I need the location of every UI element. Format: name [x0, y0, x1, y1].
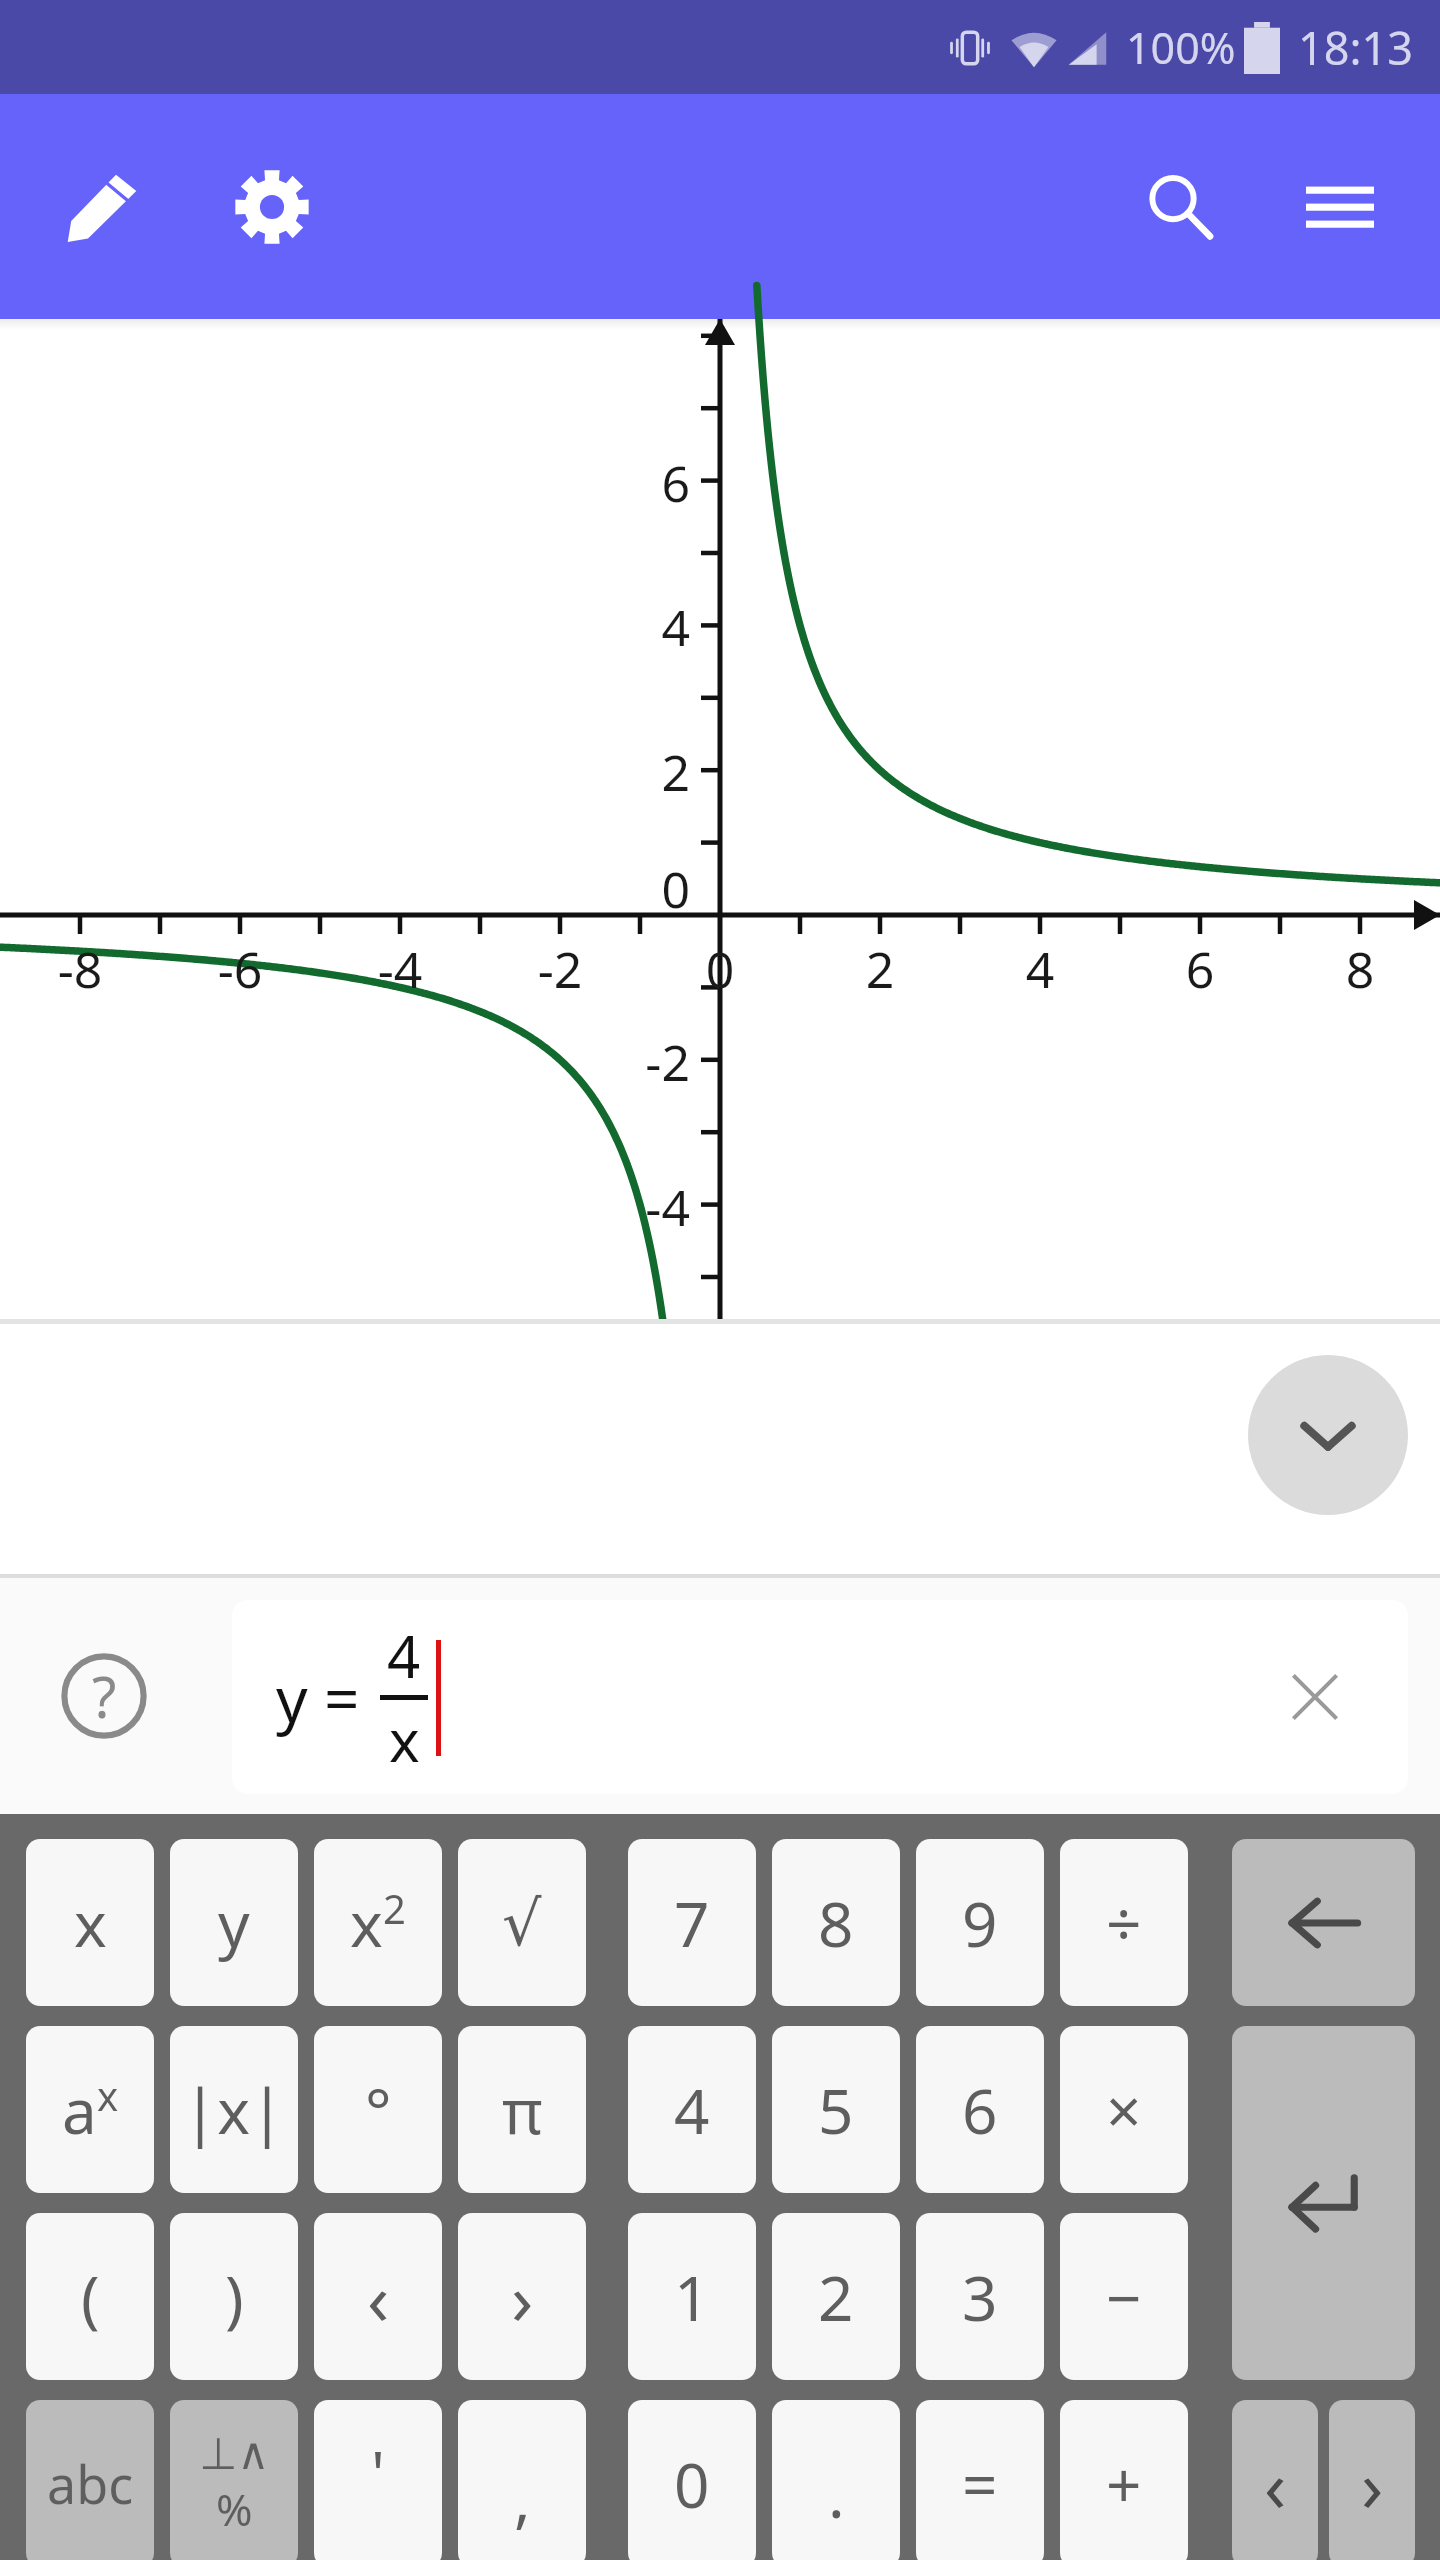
staticText: 8 — [818, 1881, 854, 1965]
staticText: x — [97, 2068, 119, 2122]
staticText: = — [962, 2442, 998, 2526]
button[interactable]: = — [916, 2400, 1044, 2560]
staticText: 4 — [674, 2068, 710, 2152]
staticText: a — [62, 2068, 97, 2152]
staticText: √ — [502, 1887, 542, 1959]
staticText: ÷ — [1106, 1881, 1142, 1965]
button[interactable]: , — [458, 2400, 586, 2560]
button[interactable]: y — [170, 1839, 298, 2006]
button[interactable]: x — [314, 1839, 442, 2006]
staticText: 4 — [610, 593, 690, 661]
staticText: 2 — [818, 2255, 854, 2339]
button[interactable]: Backspace — [1232, 1839, 1415, 2006]
button[interactable]: − — [1060, 2213, 1188, 2380]
button[interactable]: 9 — [916, 1839, 1044, 2006]
button[interactable]: abc — [26, 2400, 154, 2560]
staticText: 2 — [610, 738, 690, 806]
staticText: ⊥∧ — [199, 2428, 270, 2479]
button[interactable]: ⊥∧ — [170, 2400, 298, 2560]
button[interactable]: Clear — [1270, 1652, 1360, 1742]
staticText: -4 — [360, 935, 440, 1003]
staticText: , — [514, 2456, 531, 2540]
button[interactable]: Move left — [1232, 2400, 1318, 2560]
staticText: ‹ — [1264, 2435, 1287, 2533]
button[interactable]: 4 — [628, 2026, 756, 2193]
button[interactable]: Move right — [1329, 2400, 1415, 2560]
button[interactable]: Settings — [216, 151, 328, 263]
button[interactable]: y — [232, 1600, 1408, 1794]
staticText: |x| — [183, 2068, 285, 2152]
staticText: -2 — [610, 1028, 690, 1096]
staticText: 7 — [674, 1881, 710, 1965]
staticText: 0 — [674, 2442, 710, 2526]
staticText: 9 — [962, 1881, 998, 1965]
button[interactable]: Enter — [1232, 2026, 1415, 2380]
button[interactable]: ÷ — [1060, 1839, 1188, 2006]
staticText: . — [828, 2452, 845, 2536]
staticText: = — [324, 1656, 360, 1740]
button[interactable]: × — [1060, 2026, 1188, 2193]
button[interactable]: 6 — [916, 2026, 1044, 2193]
staticText: 0 — [680, 935, 760, 1003]
button[interactable]: 7 — [628, 1839, 756, 2006]
button[interactable]: › — [458, 2213, 586, 2380]
button[interactable]: ( — [26, 2213, 154, 2380]
staticText: 2 — [840, 935, 920, 1003]
button[interactable]: 5 — [772, 2026, 900, 2193]
staticText: 2 — [383, 1881, 406, 1935]
staticText: x — [350, 1881, 383, 1965]
staticText: ° — [365, 2068, 392, 2152]
staticText: + — [1106, 2442, 1142, 2526]
button[interactable]: Collapse — [1248, 1355, 1408, 1515]
button[interactable]: ° — [314, 2026, 442, 2193]
button[interactable]: |x| — [170, 2026, 298, 2193]
button[interactable]: 0 — [628, 2400, 756, 2560]
staticText: − — [1106, 2255, 1142, 2339]
staticText: › — [511, 2248, 534, 2346]
staticText: ' — [371, 2430, 385, 2514]
staticText: -6 — [200, 935, 280, 1003]
button[interactable]: Edit — [46, 151, 158, 263]
staticText: % — [216, 2479, 253, 2539]
staticText: 100% — [1126, 18, 1236, 77]
staticText: ‹ — [367, 2248, 390, 2346]
staticText: abc — [47, 2448, 134, 2519]
button[interactable]: Help — [40, 1632, 168, 1760]
staticText: 8 — [1320, 935, 1400, 1003]
staticText: 6 — [962, 2068, 998, 2152]
staticText: › — [1361, 2435, 1384, 2533]
staticText: 5 — [818, 2068, 854, 2152]
button[interactable]: 8 — [772, 1839, 900, 2006]
staticText: -8 — [40, 935, 120, 1003]
button[interactable]: Search — [1124, 151, 1236, 263]
button[interactable]: √ — [458, 1839, 586, 2006]
button[interactable]: π — [458, 2026, 586, 2193]
staticText: π — [502, 2068, 543, 2152]
button[interactable]: Menu — [1284, 151, 1396, 263]
button[interactable]: 3 — [916, 2213, 1044, 2380]
button[interactable]: ' — [314, 2400, 442, 2560]
staticText: × — [1106, 2068, 1142, 2152]
button[interactable]: ‹ — [314, 2213, 442, 2380]
button[interactable]: ) — [170, 2213, 298, 2380]
staticText: 0 — [610, 855, 690, 923]
staticText: ) — [225, 2255, 244, 2339]
staticText: 6 — [610, 449, 690, 517]
staticText: ( — [81, 2255, 100, 2339]
staticText: 4 — [1000, 935, 1080, 1003]
staticText: x — [74, 1881, 107, 1965]
staticText: -2 — [520, 935, 600, 1003]
button[interactable]: 1 — [628, 2213, 756, 2380]
button[interactable]: . — [772, 2400, 900, 2560]
staticText: 18:13 — [1298, 17, 1414, 78]
button[interactable]: + — [1060, 2400, 1188, 2560]
button[interactable]: 2 — [772, 2213, 900, 2380]
staticText: 3 — [962, 2255, 998, 2339]
staticText: y — [276, 1656, 308, 1740]
staticText: -4 — [610, 1173, 690, 1241]
button[interactable]: a — [26, 2026, 154, 2193]
staticText: 1 — [674, 2255, 710, 2339]
button[interactable]: x — [26, 1839, 154, 2006]
staticText: 4 — [387, 1616, 421, 1695]
staticText: x — [389, 1700, 420, 1779]
